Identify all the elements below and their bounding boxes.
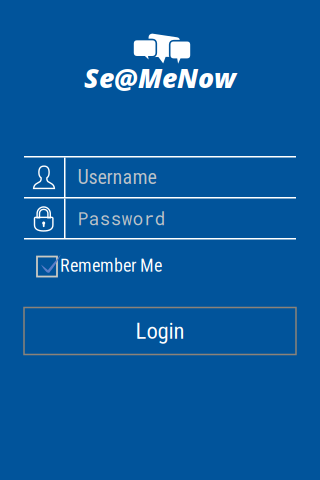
staticText: Password xyxy=(77,206,165,230)
button[interactable]: Remember Me xyxy=(0,255,320,276)
staticText: Remember Me xyxy=(60,255,162,276)
staticText: Username xyxy=(77,165,156,189)
staticText: Login xyxy=(135,318,184,344)
button[interactable]: Login xyxy=(24,307,296,354)
staticText: Se@MeNow xyxy=(84,60,236,95)
